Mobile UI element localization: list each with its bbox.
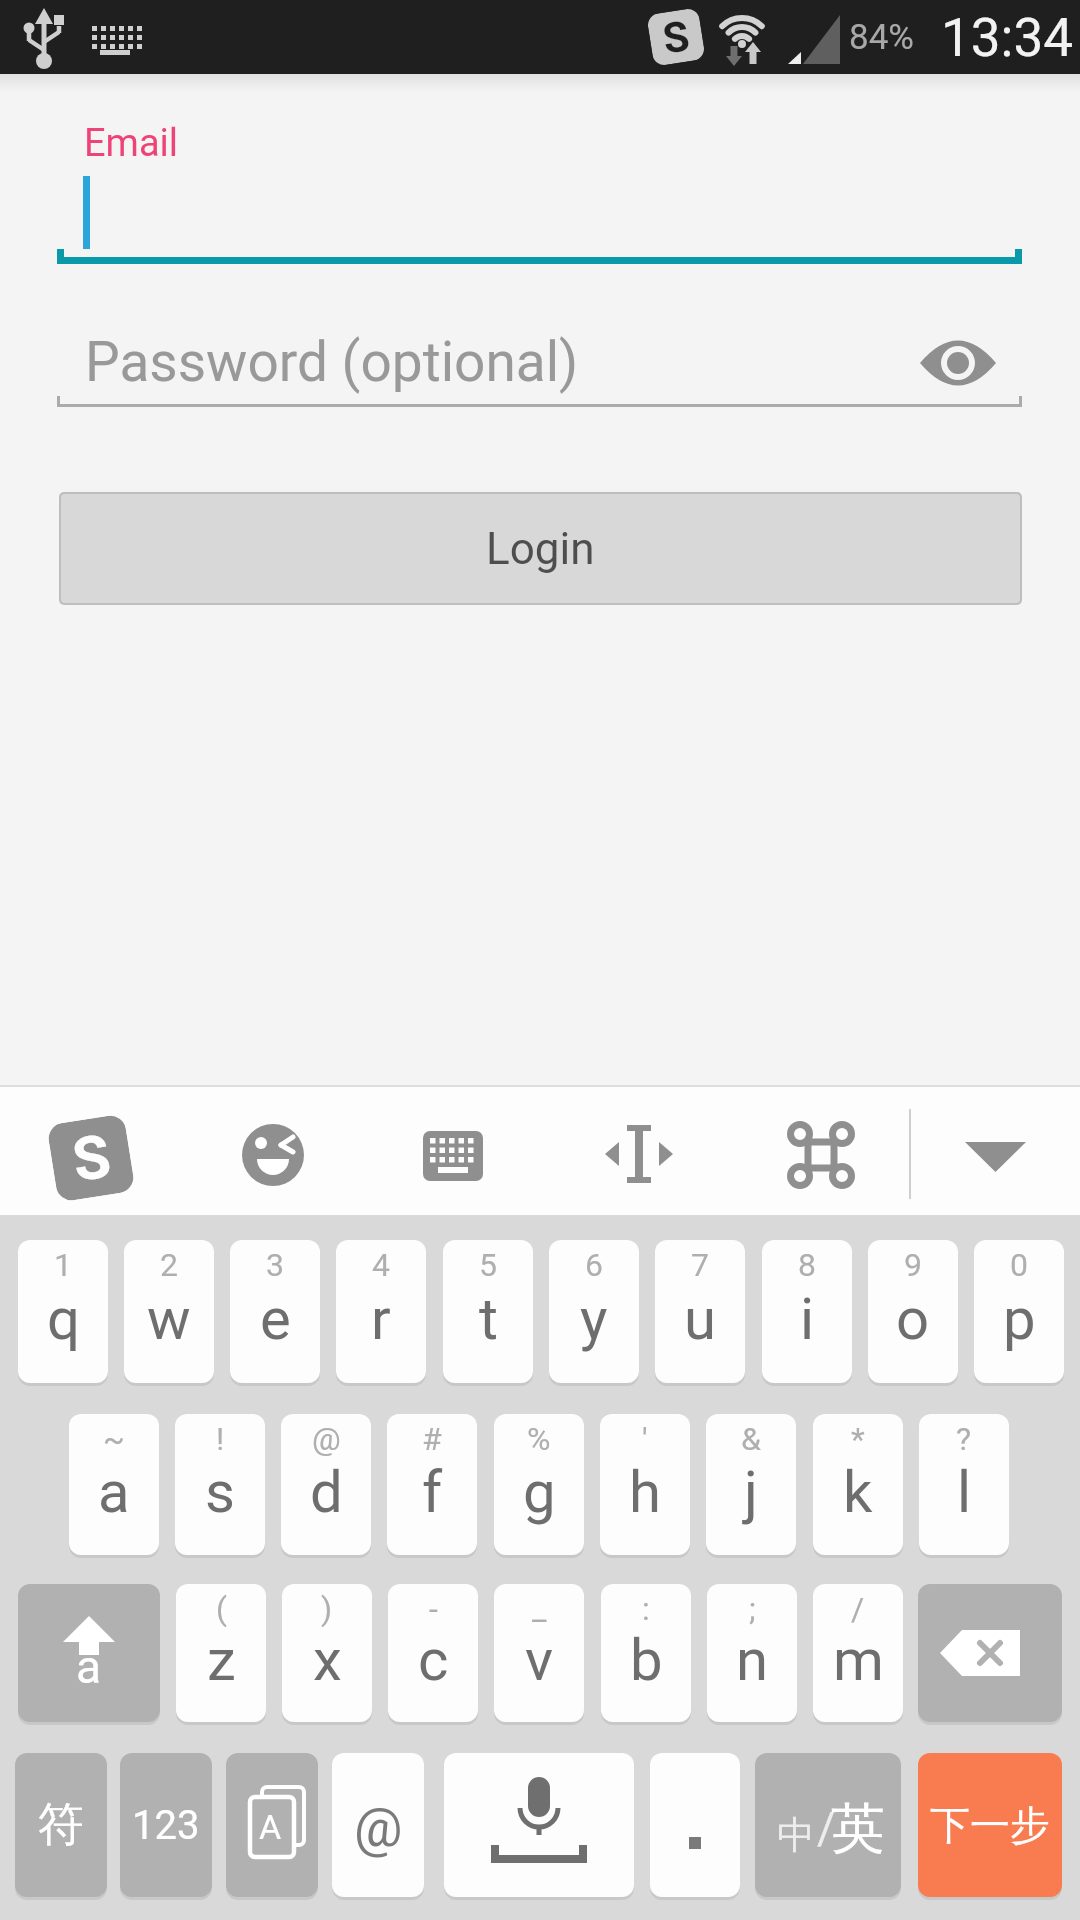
staticText: s <box>205 1458 235 1526</box>
button[interactable]: 符 <box>15 1753 107 1897</box>
button[interactable]: S <box>46 1113 136 1203</box>
staticText: t <box>479 1285 498 1353</box>
button[interactable]: % <box>494 1414 584 1555</box>
staticText: v <box>525 1626 554 1694</box>
staticText: a <box>98 1458 130 1526</box>
button[interactable]: # <box>387 1414 477 1555</box>
staticText: a <box>76 1640 102 1694</box>
staticText: Email <box>84 121 179 166</box>
button[interactable]: 6 <box>549 1240 639 1383</box>
staticText: ? <box>956 1420 972 1458</box>
button[interactable]: 8 <box>762 1240 852 1383</box>
staticText: 123 <box>132 1802 200 1849</box>
staticText: Password (optional) <box>85 330 579 394</box>
staticText: 9 <box>904 1246 922 1284</box>
button[interactable]: A <box>226 1753 318 1897</box>
button[interactable] <box>918 1584 1062 1722</box>
staticText: 英 <box>831 1795 885 1863</box>
staticText: l <box>957 1458 972 1526</box>
staticText: j <box>744 1458 758 1526</box>
staticText: 5 <box>479 1246 497 1284</box>
staticText: 7 <box>691 1246 709 1284</box>
staticText: n <box>736 1626 769 1694</box>
button[interactable] <box>598 1118 678 1188</box>
button[interactable]: ? <box>919 1414 1009 1555</box>
staticText: c <box>418 1626 449 1694</box>
staticText: d <box>310 1458 343 1526</box>
staticText: r <box>371 1285 391 1353</box>
staticText: % <box>527 1420 551 1458</box>
staticText: p <box>1003 1285 1036 1353</box>
staticText: 8 <box>798 1246 816 1284</box>
button[interactable]: : <box>601 1584 691 1722</box>
staticText: S <box>68 1120 115 1195</box>
button[interactable] <box>953 1127 1037 1185</box>
staticText: i <box>800 1285 815 1353</box>
staticText: x <box>313 1626 342 1694</box>
staticText: ( <box>216 1590 227 1628</box>
staticText: S <box>659 11 693 64</box>
staticText: : <box>642 1590 650 1628</box>
button[interactable] <box>240 1120 306 1186</box>
button[interactable]: ( <box>176 1584 266 1722</box>
staticText: # <box>422 1420 442 1458</box>
button[interactable]: 中 <box>755 1753 901 1897</box>
staticText: 符 <box>38 1796 84 1854</box>
button[interactable]: 4 <box>336 1240 426 1383</box>
staticText: 1 <box>54 1246 72 1284</box>
staticText: q <box>47 1285 80 1353</box>
staticText: - <box>429 1590 438 1628</box>
staticText: w <box>147 1285 191 1353</box>
staticText: ) <box>321 1590 333 1628</box>
staticText: g <box>523 1458 556 1526</box>
button[interactable]: 7 <box>655 1240 745 1383</box>
button[interactable]: 123 <box>120 1753 212 1897</box>
staticText: f <box>422 1458 443 1526</box>
button[interactable]: ' <box>600 1414 690 1555</box>
button[interactable]: ; <box>707 1584 797 1722</box>
button[interactable] <box>783 1118 859 1192</box>
button[interactable]: & <box>706 1414 796 1555</box>
button[interactable]: 5 <box>443 1240 533 1383</box>
button[interactable] <box>57 130 1022 260</box>
button[interactable]: 1 <box>18 1240 108 1383</box>
button[interactable]: a <box>18 1584 160 1722</box>
button[interactable] <box>650 1753 740 1897</box>
staticText: 3 <box>266 1246 284 1284</box>
button[interactable]: * <box>813 1414 903 1555</box>
staticText: h <box>629 1458 661 1526</box>
staticText: * <box>851 1420 865 1458</box>
staticText: ~ <box>103 1420 125 1458</box>
button[interactable] <box>416 1124 490 1188</box>
button[interactable]: Login <box>61 494 1020 603</box>
staticText: 84% <box>849 17 914 58</box>
button[interactable] <box>57 320 1022 404</box>
staticText: 13:34 <box>941 7 1073 69</box>
staticText: ; <box>749 1590 756 1628</box>
button[interactable]: ! <box>175 1414 265 1555</box>
staticText: 下一步 <box>930 1800 1050 1850</box>
staticText: 6 <box>585 1246 603 1284</box>
staticText: y <box>580 1285 608 1353</box>
staticText: z <box>207 1626 236 1694</box>
staticText: 中 <box>777 1811 815 1859</box>
button[interactable]: @ <box>281 1414 371 1555</box>
button[interactable]: / <box>813 1584 903 1722</box>
staticText: e <box>260 1285 291 1353</box>
button[interactable]: _ <box>494 1584 584 1722</box>
button[interactable] <box>920 335 996 391</box>
staticText: b <box>630 1626 663 1694</box>
button[interactable]: @ <box>332 1753 424 1897</box>
staticText: / <box>817 1803 836 1855</box>
button[interactable]: - <box>388 1584 478 1722</box>
button[interactable]: 下一步 <box>918 1753 1062 1897</box>
staticText: A <box>259 1807 282 1847</box>
button[interactable]: 9 <box>868 1240 958 1383</box>
button[interactable]: ) <box>282 1584 372 1722</box>
button[interactable] <box>444 1753 634 1897</box>
button[interactable]: 2 <box>124 1240 214 1383</box>
button[interactable]: ~ <box>69 1414 159 1555</box>
button[interactable]: 3 <box>230 1240 320 1383</box>
staticText: 4 <box>372 1246 390 1284</box>
button[interactable]: 0 <box>974 1240 1064 1383</box>
